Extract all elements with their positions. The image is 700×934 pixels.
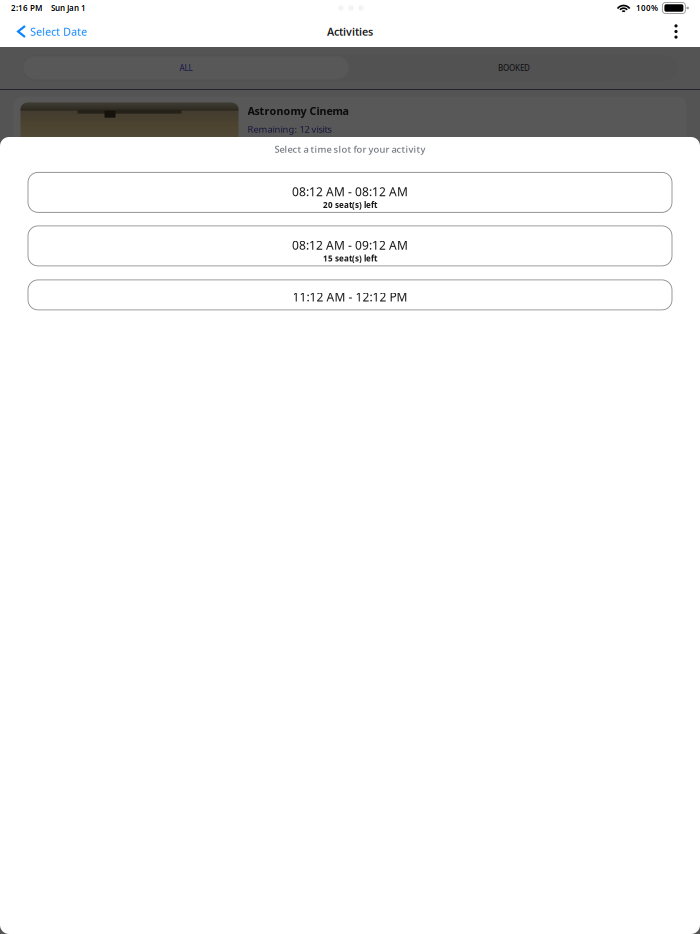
staticText: 11:12 AM - 12:12 PM bbox=[292, 289, 407, 305]
staticText: Remaining: 12 visits bbox=[247, 123, 331, 135]
button[interactable]: BOOKED bbox=[350, 55, 678, 81]
button[interactable]: More options bbox=[660, 16, 692, 47]
staticText: 2:16 PM bbox=[11, 3, 42, 13]
button[interactable]: Astronomy Cinema bbox=[0, 97, 700, 219]
staticText: Astronomy Cinema bbox=[247, 104, 348, 118]
button[interactable]: ALL bbox=[22, 55, 350, 81]
staticText: 15 seat(s) left bbox=[323, 253, 377, 264]
staticText: Sun Jan 1 bbox=[51, 3, 86, 13]
button[interactable]: 08:12 AM - 08:12 AM bbox=[28, 172, 672, 212]
staticText: Select a time slot for your activity bbox=[274, 143, 425, 155]
staticText: 100% bbox=[636, 3, 658, 13]
staticText: 08:12 AM - 08:12 AM bbox=[292, 184, 408, 199]
button[interactable]: Select Date bbox=[8, 16, 96, 47]
button[interactable]: 08:12 AM - 09:12 AM bbox=[28, 226, 672, 266]
staticText: 08:12 AM - 09:12 AM bbox=[292, 237, 408, 253]
staticText: Activities bbox=[327, 24, 373, 39]
staticText: 20 seat(s) left bbox=[323, 199, 377, 210]
button[interactable]: 11:12 AM - 12:12 PM bbox=[28, 280, 672, 310]
staticText: ALL bbox=[179, 62, 192, 73]
staticText: Select Date bbox=[30, 24, 87, 39]
staticText: BOOKED bbox=[498, 62, 530, 73]
